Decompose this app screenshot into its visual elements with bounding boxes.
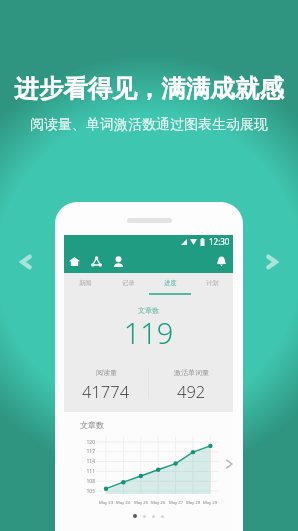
staticText: 进步看得见，满满成就感 <box>0 73 298 104</box>
staticText: May 23 <box>94 500 118 506</box>
staticText: 文章数 <box>80 420 104 430</box>
button[interactable]: Network <box>89 254 103 268</box>
staticText: 108 <box>64 478 95 485</box>
staticText: May 24 <box>111 500 135 506</box>
staticText: May 29 <box>198 500 222 506</box>
staticText: 新闻 <box>79 279 92 287</box>
staticText: 激活单词量 <box>174 368 209 377</box>
staticText: 进度 <box>164 279 177 287</box>
button[interactable]: Next <box>260 250 284 274</box>
staticText: 117 <box>64 448 95 455</box>
staticText: 记录 <box>122 279 135 287</box>
staticText: 119 <box>64 313 233 352</box>
staticText: 492 <box>177 380 206 402</box>
staticText: 105 <box>64 488 95 495</box>
button[interactable]: 进度 <box>149 273 191 295</box>
staticText: May 27 <box>164 500 188 506</box>
button[interactable]: Notifications <box>214 254 228 268</box>
staticText: 阅读量 <box>96 368 117 377</box>
staticText: May 28 <box>181 500 205 506</box>
button[interactable]: Previous <box>14 250 38 274</box>
staticText: May 25 <box>129 500 153 506</box>
button[interactable]: More <box>221 456 237 472</box>
staticText: 41774 <box>82 380 130 402</box>
button[interactable]: Profile <box>111 254 125 268</box>
staticText: 12:30 <box>209 236 230 247</box>
button[interactable]: 记录 <box>107 273 149 295</box>
staticText: 111 <box>64 468 95 475</box>
staticText: 文章数 <box>64 306 233 315</box>
staticText: 120 <box>64 439 95 446</box>
staticText: May 26 <box>146 500 170 506</box>
staticText: 114 <box>64 458 95 465</box>
staticText: 阅读量、单词激活数通过图表生动展现 <box>0 116 298 134</box>
button[interactable]: 计划 <box>191 273 233 295</box>
staticText: 计划 <box>206 279 219 287</box>
button[interactable]: Home <box>67 254 81 268</box>
button[interactable]: 新闻 <box>64 273 107 295</box>
